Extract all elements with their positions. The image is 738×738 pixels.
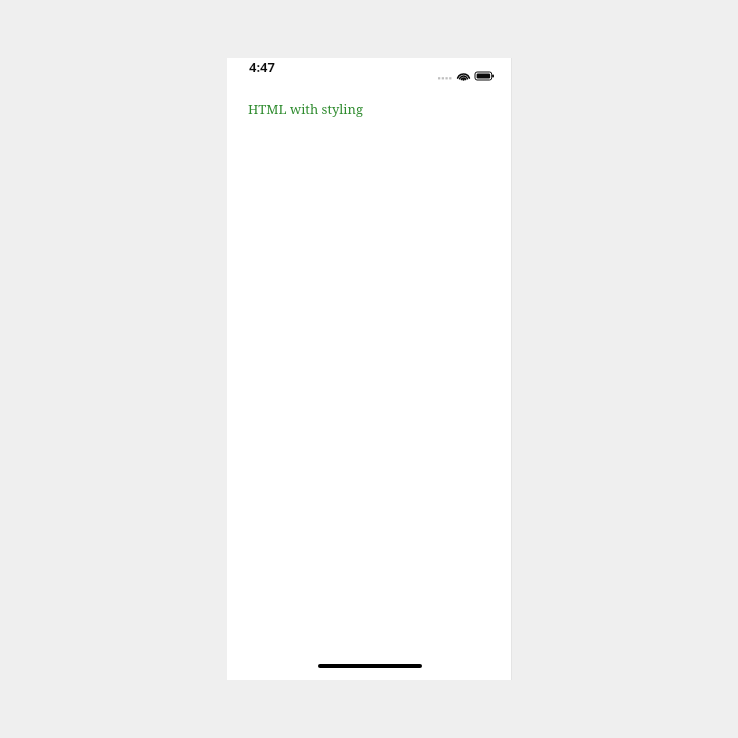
staticText: HTML with styling xyxy=(248,100,363,118)
staticText: 4:47 xyxy=(249,58,275,76)
button[interactable]: HTML with styling xyxy=(248,99,363,119)
other: Home indicator xyxy=(227,661,512,680)
